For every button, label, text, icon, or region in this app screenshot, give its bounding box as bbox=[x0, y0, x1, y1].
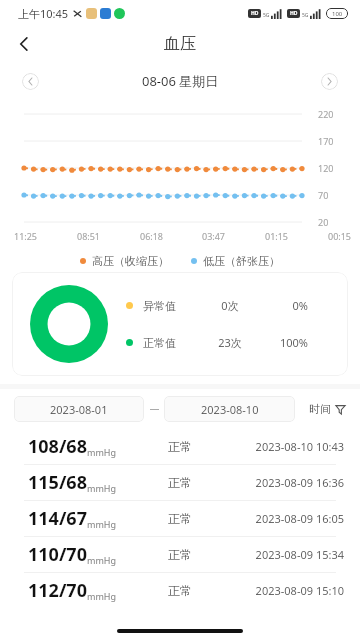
staticText: 112/70 bbox=[28, 578, 87, 603]
staticText: mmHg bbox=[87, 482, 117, 494]
staticText: 01:15 bbox=[265, 230, 289, 242]
staticText: 115/68 bbox=[28, 470, 87, 495]
staticText: 时间 bbox=[309, 402, 331, 416]
staticText: 高压（收缩压） bbox=[92, 254, 169, 268]
button[interactable]: 108/68 bbox=[0, 429, 360, 464]
staticText: 正常 bbox=[168, 583, 232, 598]
staticText: 110/70 bbox=[28, 542, 87, 567]
staticText: 08-06 星期日 bbox=[142, 72, 219, 90]
staticText: 108/68 bbox=[28, 434, 87, 459]
staticText: 0% bbox=[270, 298, 308, 313]
button[interactable]: 返回 bbox=[6, 26, 42, 62]
staticText: 0次 bbox=[210, 298, 250, 313]
staticText: 06:18 bbox=[140, 230, 164, 242]
staticText: 2023-08-09 15:10 bbox=[232, 583, 344, 598]
staticText: mmHg bbox=[87, 446, 117, 458]
staticText: 2023-08-09 16:05 bbox=[232, 511, 344, 526]
staticText: 血压 bbox=[164, 34, 196, 54]
staticText: 5G bbox=[263, 12, 270, 19]
staticText: 正常 bbox=[168, 511, 232, 526]
button[interactable]: 上一天 bbox=[22, 73, 39, 90]
button[interactable]: 下一天 bbox=[321, 73, 338, 90]
staticText: 2023-08-01 bbox=[50, 402, 108, 417]
staticText: 120 bbox=[318, 162, 334, 174]
staticText: mmHg bbox=[87, 554, 117, 566]
staticText: 2023-08-09 15:34 bbox=[232, 547, 344, 562]
staticText: 20 bbox=[318, 216, 329, 228]
staticText: 00:15 bbox=[328, 230, 352, 242]
staticText: 正常值 bbox=[143, 336, 176, 350]
staticText: 2023-08-10 bbox=[201, 402, 259, 417]
staticText: 2023-08-09 16:36 bbox=[232, 475, 344, 490]
staticText: 114/67 bbox=[28, 506, 87, 531]
staticText: 异常值 bbox=[143, 299, 176, 313]
staticText: 正常 bbox=[168, 475, 232, 490]
staticText: 23次 bbox=[210, 335, 250, 350]
staticText: 上午10:45 bbox=[18, 6, 69, 21]
staticText: 220 bbox=[318, 108, 334, 120]
button[interactable]: 114/67 bbox=[0, 501, 360, 536]
button[interactable]: 时间 bbox=[309, 402, 346, 416]
button[interactable]: 2023-08-10 bbox=[164, 396, 295, 422]
staticText: 5G bbox=[302, 12, 309, 19]
button[interactable]: 110/70 bbox=[0, 537, 360, 572]
button[interactable]: 异常值 bbox=[12, 272, 348, 376]
button[interactable]: 112/70 bbox=[0, 573, 360, 608]
staticText: 08:51 bbox=[77, 230, 101, 242]
staticText: 100 bbox=[332, 10, 343, 18]
staticText: 正常 bbox=[168, 547, 232, 562]
staticText: HD bbox=[251, 10, 259, 17]
staticText: 100% bbox=[270, 335, 308, 350]
staticText: mmHg bbox=[87, 518, 117, 530]
button[interactable]: 2023-08-01 bbox=[14, 396, 144, 422]
staticText: 03:47 bbox=[202, 230, 226, 242]
staticText: HD bbox=[290, 10, 298, 17]
button[interactable]: 115/68 bbox=[0, 465, 360, 500]
staticText: 170 bbox=[318, 135, 334, 147]
staticText: 正常 bbox=[168, 439, 232, 454]
staticText: 11:25 bbox=[14, 230, 38, 242]
staticText: 2023-08-10 10:43 bbox=[232, 439, 344, 454]
staticText: mmHg bbox=[87, 590, 117, 602]
staticText: 70 bbox=[318, 189, 329, 201]
staticText: 低压（舒张压） bbox=[203, 254, 280, 268]
